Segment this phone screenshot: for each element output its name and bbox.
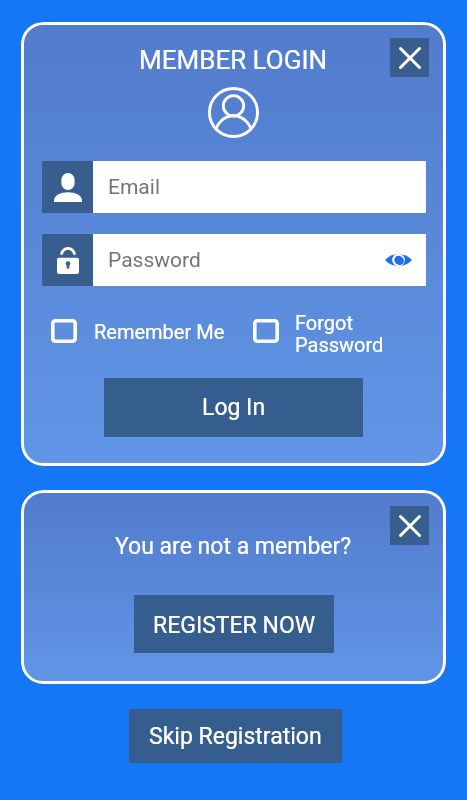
button[interactable]: Close (390, 506, 429, 545)
staticText: Password (108, 248, 201, 273)
staticText: MEMBER LOGIN (139, 45, 328, 75)
staticText: Email (108, 175, 160, 200)
button[interactable]: Remember Me (51, 319, 225, 343)
button[interactable]: Log In (104, 378, 363, 437)
button[interactable]: Skip Registration (129, 709, 342, 763)
staticText: Log In (202, 394, 266, 421)
staticText: Remember Me (94, 320, 225, 343)
button[interactable]: REGISTER NOW (134, 595, 334, 653)
staticText: Forgot Password (295, 311, 384, 357)
staticText: You are not a member? (115, 533, 352, 560)
staticText: REGISTER NOW (153, 612, 316, 639)
button[interactable]: Close (390, 38, 429, 77)
button[interactable]: Forgot Password (253, 311, 384, 357)
button[interactable]: Show password (382, 244, 414, 276)
staticText: Skip Registration (149, 723, 322, 750)
